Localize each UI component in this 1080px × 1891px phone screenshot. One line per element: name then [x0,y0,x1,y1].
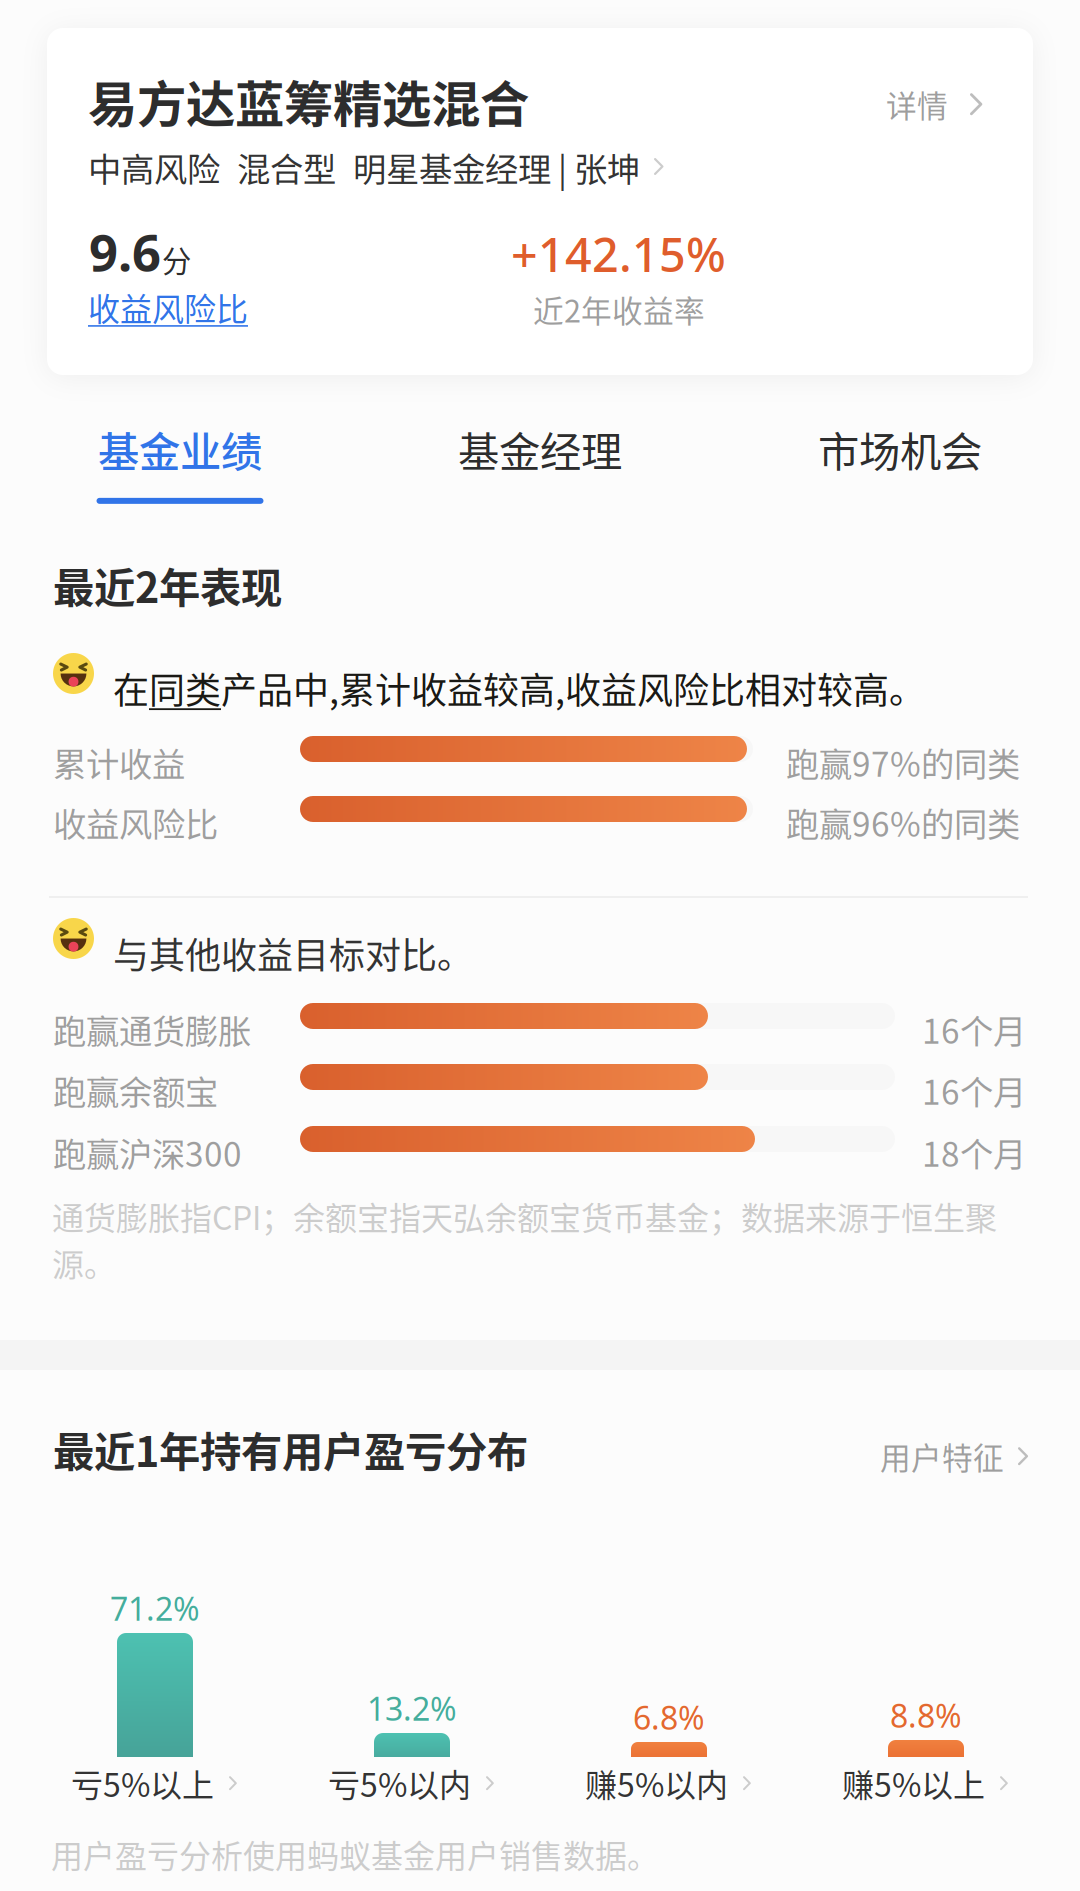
staticText: 赚5%以上 [842,1760,985,1806]
staticText: 跑赢沪深300 [53,1128,242,1176]
staticText: 收益风险比 [53,798,218,846]
staticText: 最近2年表现 [53,555,282,615]
staticText: 用户盈亏分析使用蚂蚁基金用户销售数据。 [51,1831,659,1877]
staticText: 在同类产品中,累计收益较高,收益风险比相对较高。 [113,662,925,714]
button[interactable]: 详情 [886,74,982,134]
staticText: 易方达蓝筹精选混合 [88,65,529,136]
staticText: 16个月 [922,1005,1026,1053]
staticText: 跑赢96%的同类 [786,798,1020,846]
staticText: 详情 [886,82,948,126]
button[interactable]: 亏5%以上 [71,1760,239,1806]
staticText: 基金业绩 [98,419,262,479]
staticText: 9.6 [89,218,161,285]
staticText: 累计收益 [53,738,185,786]
staticText: 跑赢通货膨胀 [53,1005,251,1053]
staticText: 中高风险 混合型 明星基金经理 | 张坤 [88,143,640,191]
button[interactable]: 赚5%以内 [585,1760,753,1806]
staticText: 用户特征 [880,1434,1004,1478]
staticText: 16个月 [922,1066,1026,1114]
button[interactable]: 基金经理 [360,419,720,504]
staticText: 亏5%以内 [328,1760,471,1806]
button[interactable]: 亏5%以内 [328,1760,496,1806]
staticText: 13.2% [367,1687,457,1729]
staticText: 通货膨胀指CPI；余额宝指天弘余额宝货币基金；数据来源于恒生聚源。 [52,1193,997,1286]
staticText: 8.8% [890,1694,962,1736]
staticText: 跑赢余额宝 [53,1066,218,1114]
button[interactable]: 基金业绩 [0,419,360,504]
staticText: 跑赢97%的同类 [786,738,1020,786]
staticText: 近2年收益率 [533,287,705,331]
staticText: 71.2% [110,1587,200,1629]
staticText: 市场机会 [818,419,982,479]
button[interactable]: 赚5%以上 [842,1760,1010,1806]
button[interactable]: 收益风险比 [88,284,248,330]
staticText: 收益风险比 [88,284,248,330]
staticText: +142.15% [511,223,726,285]
staticText: 分 [162,238,191,280]
staticText: 18个月 [922,1128,1026,1176]
button[interactable]: 市场机会 [720,419,1080,504]
staticText: 基金经理 [458,419,622,479]
staticText: 亏5%以上 [71,1760,214,1806]
staticText: 与其他收益目标对比。 [113,927,473,979]
staticText: 最近1年持有用户盈亏分布 [53,1419,528,1479]
button[interactable]: 用户特征 [880,1426,1028,1486]
staticText: 6.8% [633,1696,705,1738]
staticText: 赚5%以内 [585,1760,728,1806]
